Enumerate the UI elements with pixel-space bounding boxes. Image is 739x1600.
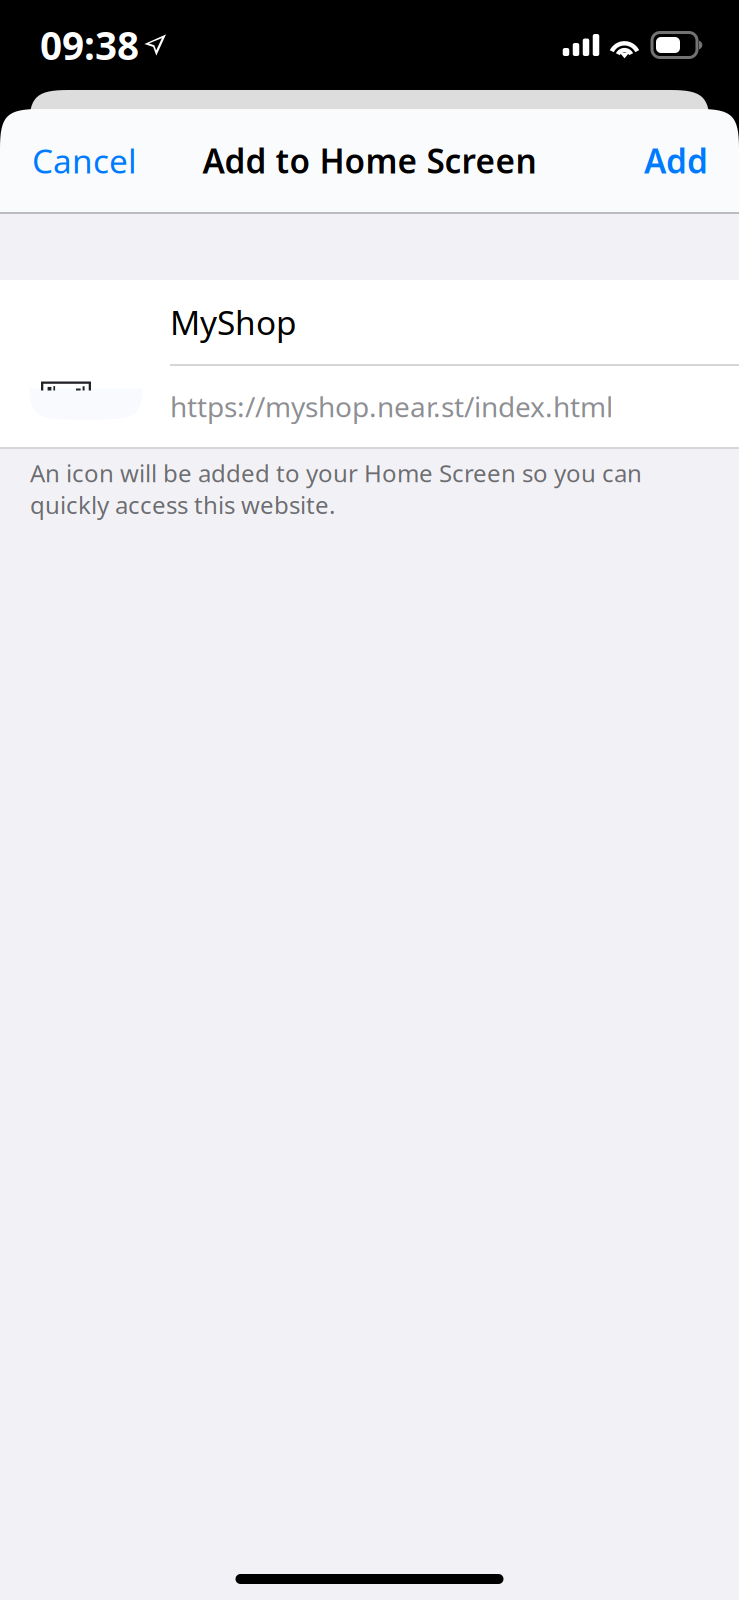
button[interactable]: Cancel	[0, 109, 169, 212]
staticText: Add	[644, 138, 708, 183]
button[interactable]: MyShop	[170, 280, 739, 364]
staticText: An icon will be added to your Home Scree…	[30, 457, 642, 521]
staticText: Cancel	[32, 138, 137, 183]
staticText: 09:38	[40, 19, 139, 71]
button[interactable]: https://myshop.near.st/index.html	[170, 366, 739, 447]
button[interactable]: Add	[613, 109, 739, 212]
staticText: https://myshop.near.st/index.html	[170, 388, 613, 425]
staticText: MyShop	[170, 300, 297, 344]
staticText: Add to Home Screen	[202, 138, 536, 183]
